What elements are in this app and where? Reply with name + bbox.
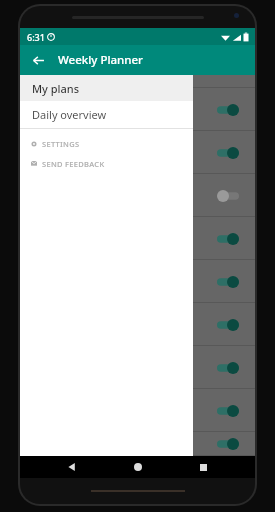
staticText: Weekly Planner <box>58 52 143 68</box>
staticText: SEND FEEDBACK <box>42 159 105 169</box>
button[interactable] <box>20 217 255 260</box>
button[interactable] <box>20 389 255 432</box>
button[interactable]: SEND FEEDBACK <box>20 154 193 174</box>
button[interactable] <box>20 432 255 456</box>
staticText: 6:31 <box>27 31 45 43</box>
button[interactable] <box>20 45 255 88</box>
staticText: My plans <box>32 81 80 96</box>
button[interactable] <box>20 346 255 389</box>
button[interactable]: Daily overview <box>20 101 193 128</box>
button[interactable]: My plans <box>20 75 193 101</box>
button[interactable]: Back <box>26 48 50 72</box>
staticText: SETTINGS <box>42 139 80 149</box>
button[interactable]: SETTINGS <box>20 134 193 154</box>
staticText: Daily overview <box>32 107 107 122</box>
button[interactable]: Recent apps <box>190 456 216 478</box>
button[interactable]: Back <box>59 456 85 478</box>
button[interactable] <box>20 174 255 217</box>
button[interactable] <box>20 88 255 131</box>
button[interactable] <box>20 260 255 303</box>
button[interactable] <box>20 131 255 174</box>
button[interactable] <box>20 303 255 346</box>
button[interactable]: Home <box>125 456 151 478</box>
